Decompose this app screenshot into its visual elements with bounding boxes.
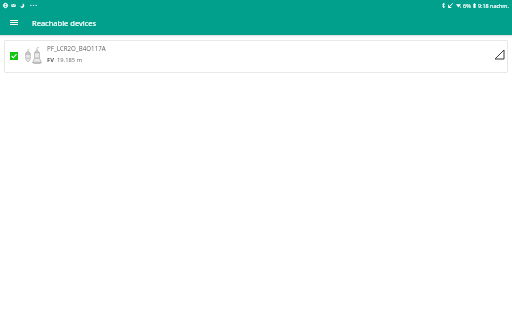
button[interactable]: Device selected (4, 40, 508, 73)
staticText: 19.185 m (57, 56, 83, 64)
staticText: Reachable devices (32, 18, 97, 28)
button[interactable]: Device selected (10, 52, 18, 60)
staticText: PF_LCR2O_B4O117A (47, 44, 106, 52)
staticText: 9:18 nachm. (478, 2, 509, 9)
staticText: 6% (463, 2, 471, 9)
button[interactable]: Open navigation menu (5, 13, 23, 31)
staticText: FV (47, 56, 54, 64)
button[interactable]: Signal strength (492, 47, 506, 61)
